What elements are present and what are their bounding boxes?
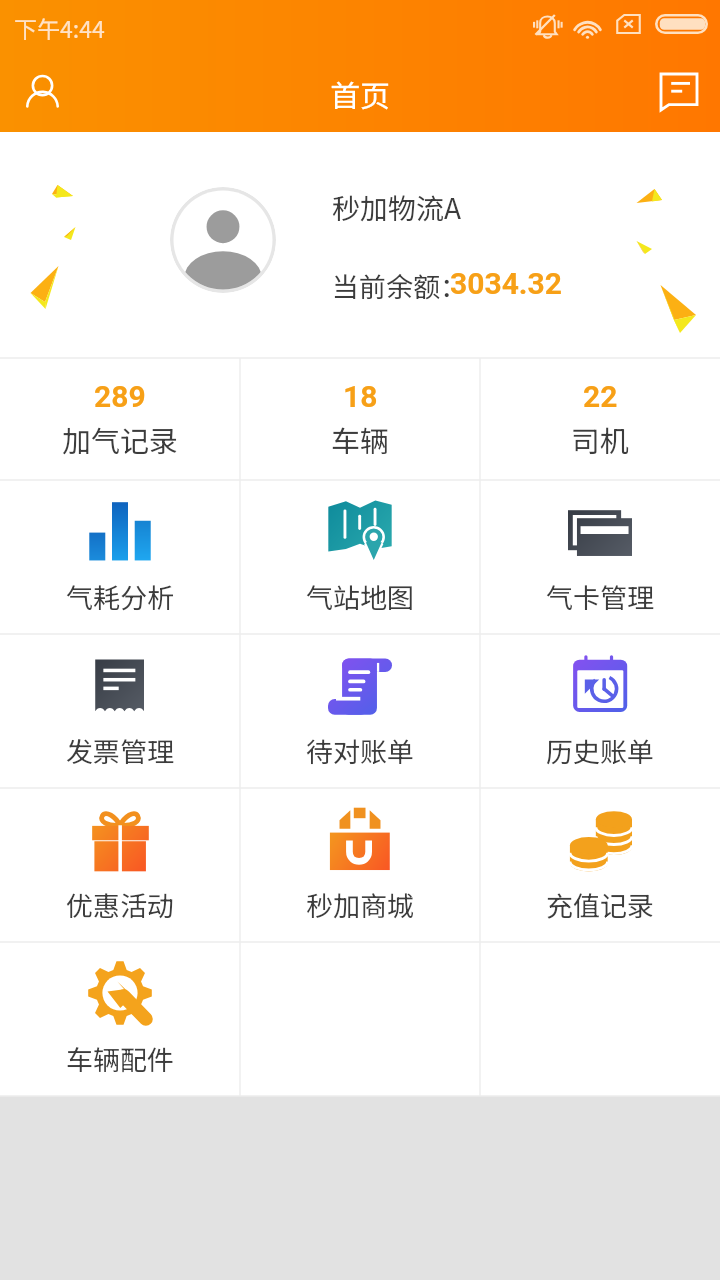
- button[interactable]: Profile: [6, 56, 78, 128]
- staticText: 司机: [571, 418, 630, 460]
- staticText: 气耗分析: [66, 577, 174, 616]
- staticText: 气站地图: [306, 577, 414, 616]
- button[interactable]: 秒加商城: [240, 788, 480, 942]
- staticText: 车辆配件: [66, 1039, 174, 1078]
- staticText: 加气记录: [62, 418, 179, 460]
- button[interactable]: 18: [240, 358, 480, 480]
- button[interactable]: 待对账单: [240, 634, 480, 788]
- staticText: 优惠活动: [66, 885, 174, 924]
- staticText: 历史账单: [546, 731, 654, 770]
- staticText: 秒加商城: [306, 885, 414, 924]
- staticText: 充值记录: [546, 885, 654, 924]
- button[interactable]: Messages: [641, 54, 713, 126]
- staticText: 首页: [330, 72, 390, 115]
- staticText: 3034.32: [450, 266, 562, 301]
- button[interactable]: 气耗分析: [0, 480, 240, 634]
- button[interactable]: 气站地图: [240, 480, 480, 634]
- staticText: 289: [94, 379, 146, 414]
- staticText: 待对账单: [306, 731, 414, 770]
- button[interactable]: 289: [0, 358, 240, 480]
- staticText: 车辆: [331, 418, 390, 460]
- staticText: 气卡管理: [546, 577, 654, 616]
- button[interactable]: 优惠活动: [0, 788, 240, 942]
- button[interactable]: 历史账单: [480, 634, 720, 788]
- staticText: 秒加物流A: [332, 187, 462, 228]
- button[interactable]: 充值记录: [480, 788, 720, 942]
- staticText: 22: [583, 379, 618, 414]
- staticText: 发票管理: [66, 731, 174, 770]
- button[interactable]: 气卡管理: [480, 480, 720, 634]
- button[interactable]: Avatar: [170, 187, 276, 293]
- button[interactable]: 车辆配件: [0, 942, 240, 1096]
- staticText: 当前余额：: [332, 266, 467, 305]
- staticText: 18: [343, 379, 378, 414]
- staticText: 下午4:44: [14, 11, 105, 44]
- button[interactable]: 22: [480, 358, 720, 480]
- button[interactable]: 发票管理: [0, 634, 240, 788]
